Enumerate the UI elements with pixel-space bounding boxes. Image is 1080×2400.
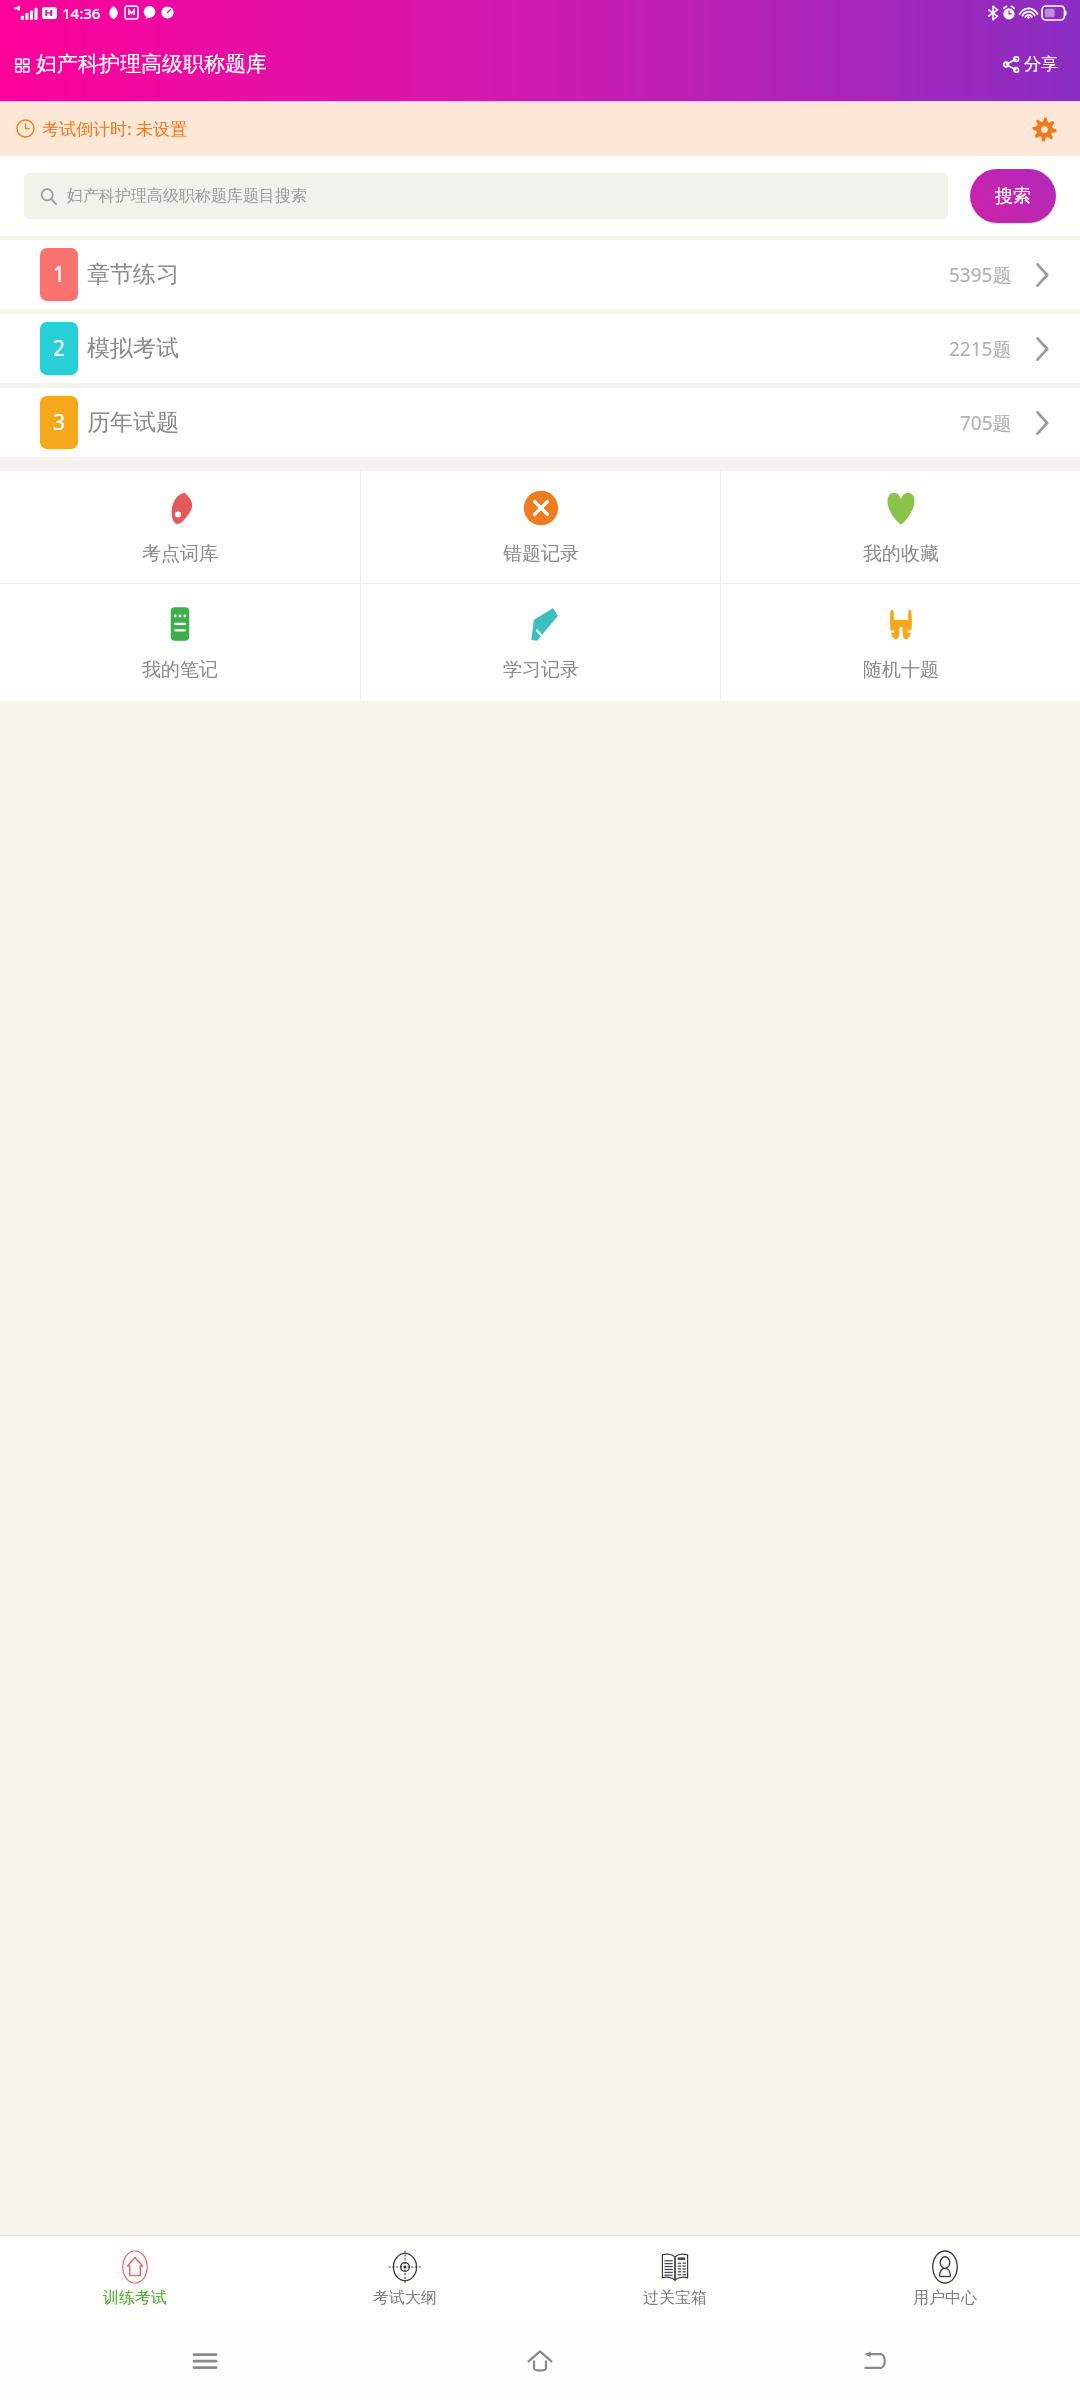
- button[interactable]: 妇产科护理高级职称题库题目搜索: [24, 173, 948, 219]
- button[interactable]: 我的收藏: [721, 471, 1080, 583]
- button[interactable]: 过关宝箱: [540, 2236, 810, 2321]
- staticText: 章节练习: [87, 260, 179, 289]
- button[interactable]: 设置: [1026, 111, 1062, 147]
- button[interactable]: 考试倒计时: 未设置: [0, 101, 1080, 156]
- staticText: 用户中心: [913, 2288, 977, 2308]
- staticText: 历年试题: [87, 408, 179, 437]
- button[interactable]: 学习记录: [361, 584, 720, 701]
- staticText: 过关宝箱: [643, 2288, 707, 2308]
- staticText: 5395题: [949, 262, 1012, 288]
- staticText: 我的收藏: [863, 542, 939, 566]
- button[interactable]: 1: [0, 240, 1080, 309]
- button[interactable]: Recent apps: [181, 2337, 229, 2385]
- staticText: 模拟考试: [87, 334, 179, 363]
- staticText: 2: [53, 334, 66, 363]
- staticText: 考点词库: [142, 542, 218, 566]
- button[interactable]: 我的笔记: [0, 584, 360, 701]
- staticText: 我的笔记: [142, 658, 218, 682]
- staticText: 训练考试: [103, 2288, 167, 2308]
- staticText: 分享: [1024, 54, 1058, 75]
- button[interactable]: 考点词库: [0, 471, 360, 583]
- button[interactable]: 分享: [997, 46, 1064, 83]
- button[interactable]: 错题记录: [361, 471, 720, 583]
- button[interactable]: 搜索: [970, 169, 1056, 223]
- staticText: 随机十题: [863, 658, 939, 682]
- staticText: 错题记录: [503, 542, 579, 566]
- staticText: 14:36: [62, 3, 101, 23]
- staticText: 3: [53, 408, 66, 437]
- button[interactable]: 2: [0, 314, 1080, 383]
- staticText: 考试大纲: [373, 2288, 437, 2308]
- staticText: 搜索: [995, 185, 1031, 208]
- button[interactable]: 考试大纲: [270, 2236, 540, 2321]
- staticText: 1: [53, 260, 66, 289]
- button[interactable]: Home: [516, 2337, 564, 2385]
- staticText: 妇产科护理高级职称题库: [36, 51, 267, 77]
- button[interactable]: Back: [851, 2337, 899, 2385]
- button[interactable]: 训练考试: [0, 2236, 270, 2321]
- staticText: 学习记录: [503, 658, 579, 682]
- staticText: 705题: [960, 410, 1012, 436]
- staticText: 妇产科护理高级职称题库题目搜索: [67, 186, 307, 206]
- button[interactable]: 3: [0, 388, 1080, 457]
- staticText: 2215题: [949, 336, 1012, 362]
- staticText: 考试倒计时: 未设置: [42, 117, 188, 140]
- button[interactable]: 随机十题: [721, 584, 1080, 701]
- button[interactable]: 用户中心: [810, 2236, 1080, 2321]
